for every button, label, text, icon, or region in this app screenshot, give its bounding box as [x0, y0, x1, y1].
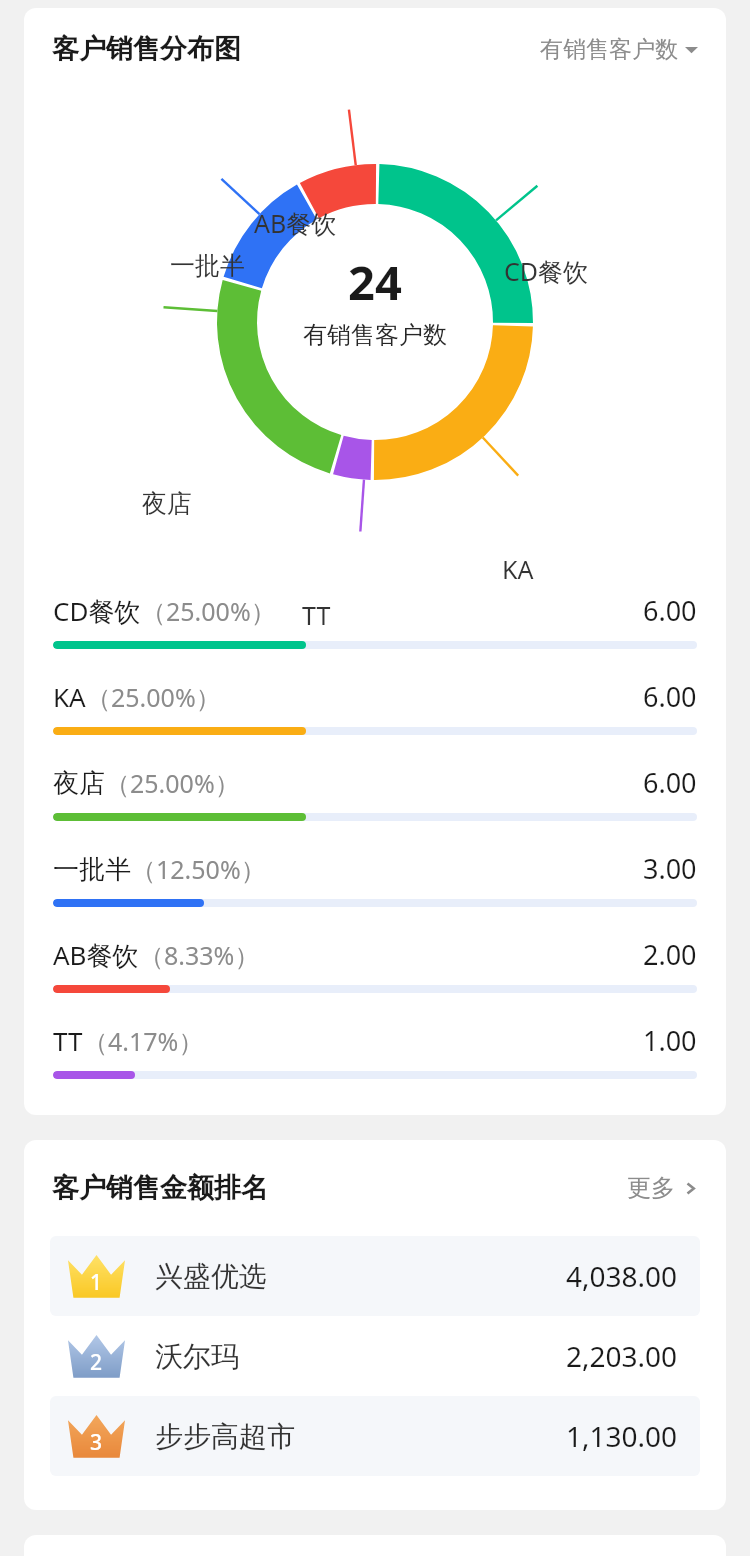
staticText: CD餐饮 [53, 593, 141, 629]
staticText: 有销售客户数 [303, 320, 447, 350]
staticText: TT [53, 1023, 83, 1058]
staticText: 客户销售分布图 [52, 32, 241, 66]
staticText: 3.00 [643, 850, 697, 887]
button[interactable]: TT [24, 1022, 726, 1079]
button[interactable]: 有销售客户数 [540, 35, 698, 64]
staticText: 一批半 [53, 853, 131, 886]
button[interactable]: AB餐饮 [24, 936, 726, 993]
staticText: 一批半 [170, 250, 245, 281]
staticText: 更多 [627, 1173, 675, 1203]
staticText: 夜店 [142, 488, 192, 519]
button[interactable]: 夜店 [24, 764, 726, 821]
staticText: 1.00 [643, 1022, 697, 1059]
staticText: 3 [90, 1428, 103, 1457]
staticText: （8.33%） [139, 938, 260, 972]
staticText: TT [302, 598, 331, 632]
staticText: （4.17%） [83, 1024, 204, 1058]
staticText: 2,203.00 [566, 1337, 678, 1375]
staticText: AB餐饮 [254, 206, 337, 240]
staticText: （25.00%） [86, 680, 221, 714]
staticText: KA [502, 552, 534, 586]
staticText: 24 [348, 250, 402, 314]
button[interactable]: 1 [50, 1236, 700, 1316]
button[interactable]: KA [24, 678, 726, 735]
staticText: CD餐饮 [504, 254, 589, 288]
staticText: 1,130.00 [566, 1417, 678, 1455]
staticText: 2.00 [643, 936, 697, 973]
staticText: 兴盛优选 [155, 1259, 267, 1294]
staticText: （12.50%） [131, 852, 266, 886]
staticText: 有销售客户数 [540, 35, 678, 64]
button[interactable]: 3 [50, 1396, 700, 1476]
button[interactable]: 一批半 [24, 850, 726, 907]
staticText: KA [53, 679, 86, 714]
staticText: 夜店 [53, 767, 105, 800]
staticText: 客户销售金额排名 [52, 1171, 268, 1205]
button[interactable]: 更多 [627, 1173, 698, 1203]
button[interactable]: 2 [50, 1316, 700, 1396]
staticText: （25.00%） [141, 594, 276, 628]
staticText: 步步高超市 [155, 1419, 295, 1454]
staticText: 沃尔玛 [155, 1339, 239, 1374]
staticText: 4,038.00 [566, 1257, 678, 1295]
staticText: 6.00 [643, 592, 697, 629]
staticText: （25.00%） [105, 766, 240, 800]
staticText: 2 [90, 1348, 103, 1377]
staticText: 6.00 [643, 678, 697, 715]
staticText: 1 [90, 1268, 103, 1297]
staticText: 6.00 [643, 764, 697, 801]
staticText: AB餐饮 [53, 937, 139, 973]
button[interactable]: CD餐饮 [24, 592, 726, 649]
